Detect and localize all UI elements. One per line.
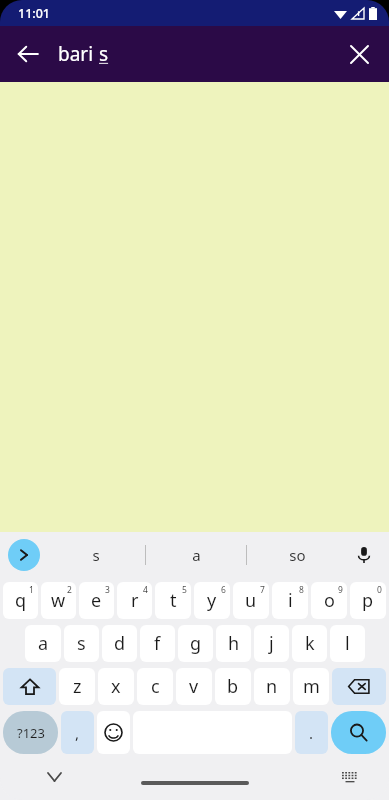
staticText: p: [362, 588, 374, 613]
button[interactable]: Period: [295, 711, 328, 754]
staticText: h: [228, 631, 240, 656]
button[interactable]: m: [293, 668, 329, 705]
button[interactable]: More suggestions: [8, 539, 40, 571]
staticText: so: [289, 545, 306, 565]
staticText: d: [114, 631, 126, 656]
staticText: g: [190, 631, 202, 656]
staticText: m: [303, 674, 320, 699]
button[interactable]: p: [350, 582, 386, 619]
button[interactable]: Change keyboard: [333, 760, 367, 794]
button[interactable]: q: [3, 582, 38, 619]
staticText: t: [170, 588, 177, 613]
button[interactable]: Close: [337, 32, 381, 76]
staticText: ?123: [17, 724, 45, 742]
button[interactable]: k: [292, 625, 327, 662]
staticText: e: [91, 588, 102, 613]
button[interactable]: o: [311, 582, 347, 619]
staticText: a: [192, 545, 201, 565]
staticText: s: [92, 545, 100, 565]
button[interactable]: f: [140, 625, 175, 662]
staticText: l: [345, 631, 350, 656]
button[interactable]: a: [25, 625, 61, 662]
button[interactable]: v: [176, 668, 212, 705]
staticText: i: [288, 588, 293, 613]
staticText: n: [266, 674, 278, 699]
staticText: 2: [67, 584, 72, 596]
button[interactable]: w: [41, 582, 76, 619]
staticText: y: [207, 588, 217, 613]
button[interactable]: ?123: [3, 711, 58, 754]
button[interactable]: d: [102, 625, 137, 662]
button[interactable]: Shift: [3, 668, 56, 705]
button[interactable]: Comma: [61, 711, 94, 754]
staticText: s: [77, 631, 86, 656]
staticText: a: [38, 631, 49, 656]
button[interactable]: Voice input: [347, 538, 381, 572]
button[interactable]: y: [194, 582, 230, 619]
staticText: c: [151, 674, 160, 699]
button[interactable]: a: [146, 532, 246, 577]
staticText: bari: [58, 41, 99, 67]
button[interactable]: b: [215, 668, 251, 705]
staticText: 4: [143, 584, 148, 596]
staticText: z: [73, 674, 82, 699]
staticText: 6: [221, 584, 226, 596]
staticText: ,: [75, 723, 80, 743]
button[interactable]: x: [98, 668, 134, 705]
staticText: 5: [182, 584, 187, 596]
button[interactable]: Emoji: [97, 711, 130, 754]
button[interactable]: z: [59, 668, 95, 705]
staticText: u: [245, 588, 257, 613]
staticText: b: [227, 674, 239, 699]
staticText: w: [51, 588, 66, 613]
button[interactable]: s: [64, 625, 99, 662]
staticText: q: [15, 588, 27, 613]
staticText: v: [189, 674, 199, 699]
button[interactable]: Hide keyboard: [36, 759, 72, 795]
button[interactable]: i: [272, 582, 308, 619]
button[interactable]: g: [178, 625, 213, 662]
button[interactable]: so: [247, 532, 347, 577]
staticText: o: [324, 588, 335, 613]
staticText: 8: [299, 584, 304, 596]
button[interactable]: t: [155, 582, 191, 619]
button[interactable]: l: [330, 625, 365, 662]
staticText: 11:01: [18, 5, 51, 22]
button[interactable]: s: [46, 532, 145, 577]
staticText: 0: [377, 584, 382, 596]
button[interactable]: j: [254, 625, 289, 662]
button[interactable]: e: [79, 582, 114, 619]
button[interactable]: Search: [331, 711, 386, 754]
staticText: .: [309, 723, 314, 743]
button[interactable]: u: [233, 582, 269, 619]
button[interactable]: r: [117, 582, 152, 619]
staticText: x: [111, 674, 121, 699]
button[interactable]: Back: [6, 32, 50, 76]
staticText: r: [131, 588, 139, 613]
staticText: 9: [338, 584, 343, 596]
button[interactable]: n: [254, 668, 290, 705]
staticText: f: [154, 631, 161, 656]
staticText: 7: [260, 584, 265, 596]
button[interactable]: h: [216, 625, 251, 662]
staticText: 3: [105, 584, 110, 596]
button[interactable]: Backspace: [332, 668, 386, 705]
button[interactable]: c: [137, 668, 173, 705]
staticText: s: [99, 41, 109, 67]
staticText: 1: [29, 584, 34, 596]
staticText: j: [269, 631, 274, 656]
staticText: k: [305, 631, 315, 656]
